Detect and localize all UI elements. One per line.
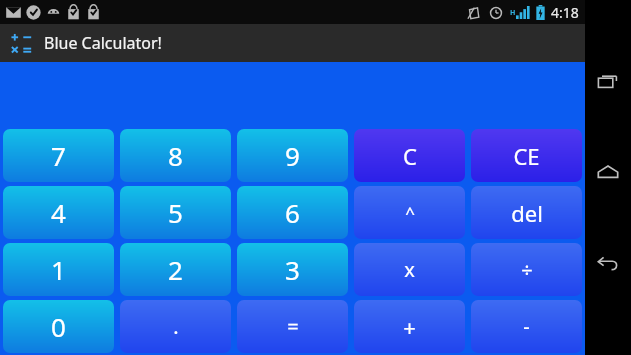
staticText: +	[403, 312, 416, 342]
staticText: -	[523, 313, 530, 340]
staticText: ^	[405, 201, 415, 224]
staticText: .	[173, 313, 179, 340]
button[interactable]: ÷	[471, 243, 582, 296]
button[interactable]: x	[354, 243, 465, 296]
button[interactable]: Home	[585, 150, 631, 196]
button[interactable]: 7	[3, 129, 114, 182]
staticText: =	[287, 313, 299, 340]
staticText: CE	[513, 141, 540, 171]
staticText: 8	[168, 138, 183, 173]
button[interactable]: -	[471, 300, 582, 353]
button[interactable]: 8	[120, 129, 231, 182]
staticText: del	[511, 198, 543, 228]
button[interactable]: 3	[237, 243, 348, 296]
staticText: C	[403, 141, 417, 171]
staticText: 0	[51, 309, 66, 344]
button[interactable]: 0	[3, 300, 114, 353]
button[interactable]: 1	[3, 243, 114, 296]
staticText: Blue Calculator!	[44, 32, 162, 54]
button[interactable]: del	[471, 186, 582, 239]
button[interactable]: ^	[354, 186, 465, 239]
staticText: 2	[168, 252, 183, 287]
staticText: 1	[51, 252, 66, 287]
staticText: 9	[285, 138, 300, 173]
staticText: 6	[285, 195, 300, 230]
staticText: 4	[51, 195, 66, 230]
button[interactable]: Back	[585, 240, 631, 286]
button[interactable]: Recents	[585, 60, 631, 106]
button[interactable]: 6	[237, 186, 348, 239]
staticText: ÷	[521, 256, 533, 283]
button[interactable]: 5	[120, 186, 231, 239]
button[interactable]: +	[354, 300, 465, 353]
staticText: x	[404, 256, 415, 283]
staticText: 3	[285, 252, 300, 287]
staticText: H	[510, 8, 516, 18]
button[interactable]: .	[120, 300, 231, 353]
button[interactable]: =	[237, 300, 348, 353]
staticText: 7	[51, 138, 66, 173]
button[interactable]: 2	[120, 243, 231, 296]
staticText: 4:18	[551, 3, 579, 22]
button[interactable]: 9	[237, 129, 348, 182]
button[interactable]: CE	[471, 129, 582, 182]
button[interactable]: 4	[3, 186, 114, 239]
button[interactable]: C	[354, 129, 465, 182]
staticText: 5	[168, 195, 183, 230]
